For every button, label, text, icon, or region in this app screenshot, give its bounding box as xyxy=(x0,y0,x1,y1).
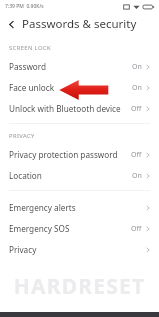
staticText: On xyxy=(132,83,142,93)
staticText: Password xyxy=(9,61,47,72)
staticText: 7:39 PM 0.90K/s xyxy=(5,3,44,10)
button[interactable]: Emergency SOS xyxy=(0,218,159,239)
staticText: PRIVACY xyxy=(9,132,35,140)
button[interactable]: Privacy protection password xyxy=(0,144,159,165)
button[interactable]: Face unlock xyxy=(0,77,159,98)
button[interactable]: Emergency alerts xyxy=(0,197,159,218)
staticText: Face unlock xyxy=(9,82,55,93)
staticText: Privacy protection password xyxy=(9,149,118,160)
staticText: Off xyxy=(131,224,142,234)
staticText: Emergency alerts xyxy=(9,202,76,213)
staticText: Location xyxy=(9,170,42,181)
staticText: Off xyxy=(131,104,142,114)
staticText: On xyxy=(132,62,142,72)
button[interactable]: Back xyxy=(0,13,22,35)
button[interactable]: Unlock with Bluetooth device xyxy=(0,98,159,119)
staticText: SCREEN LOCK xyxy=(9,44,51,52)
staticText: Privacy xyxy=(9,244,37,255)
staticText: On xyxy=(132,171,142,181)
staticText: HARDRESET xyxy=(0,272,159,301)
staticText: Emergency SOS xyxy=(9,223,70,234)
button[interactable]: Password xyxy=(0,56,159,77)
staticText: Passwords & security xyxy=(22,16,137,32)
staticText: Off xyxy=(131,150,142,160)
button[interactable]: Location xyxy=(0,165,159,186)
staticText: Unlock with Bluetooth device xyxy=(9,103,121,114)
button[interactable]: Privacy xyxy=(0,239,159,260)
